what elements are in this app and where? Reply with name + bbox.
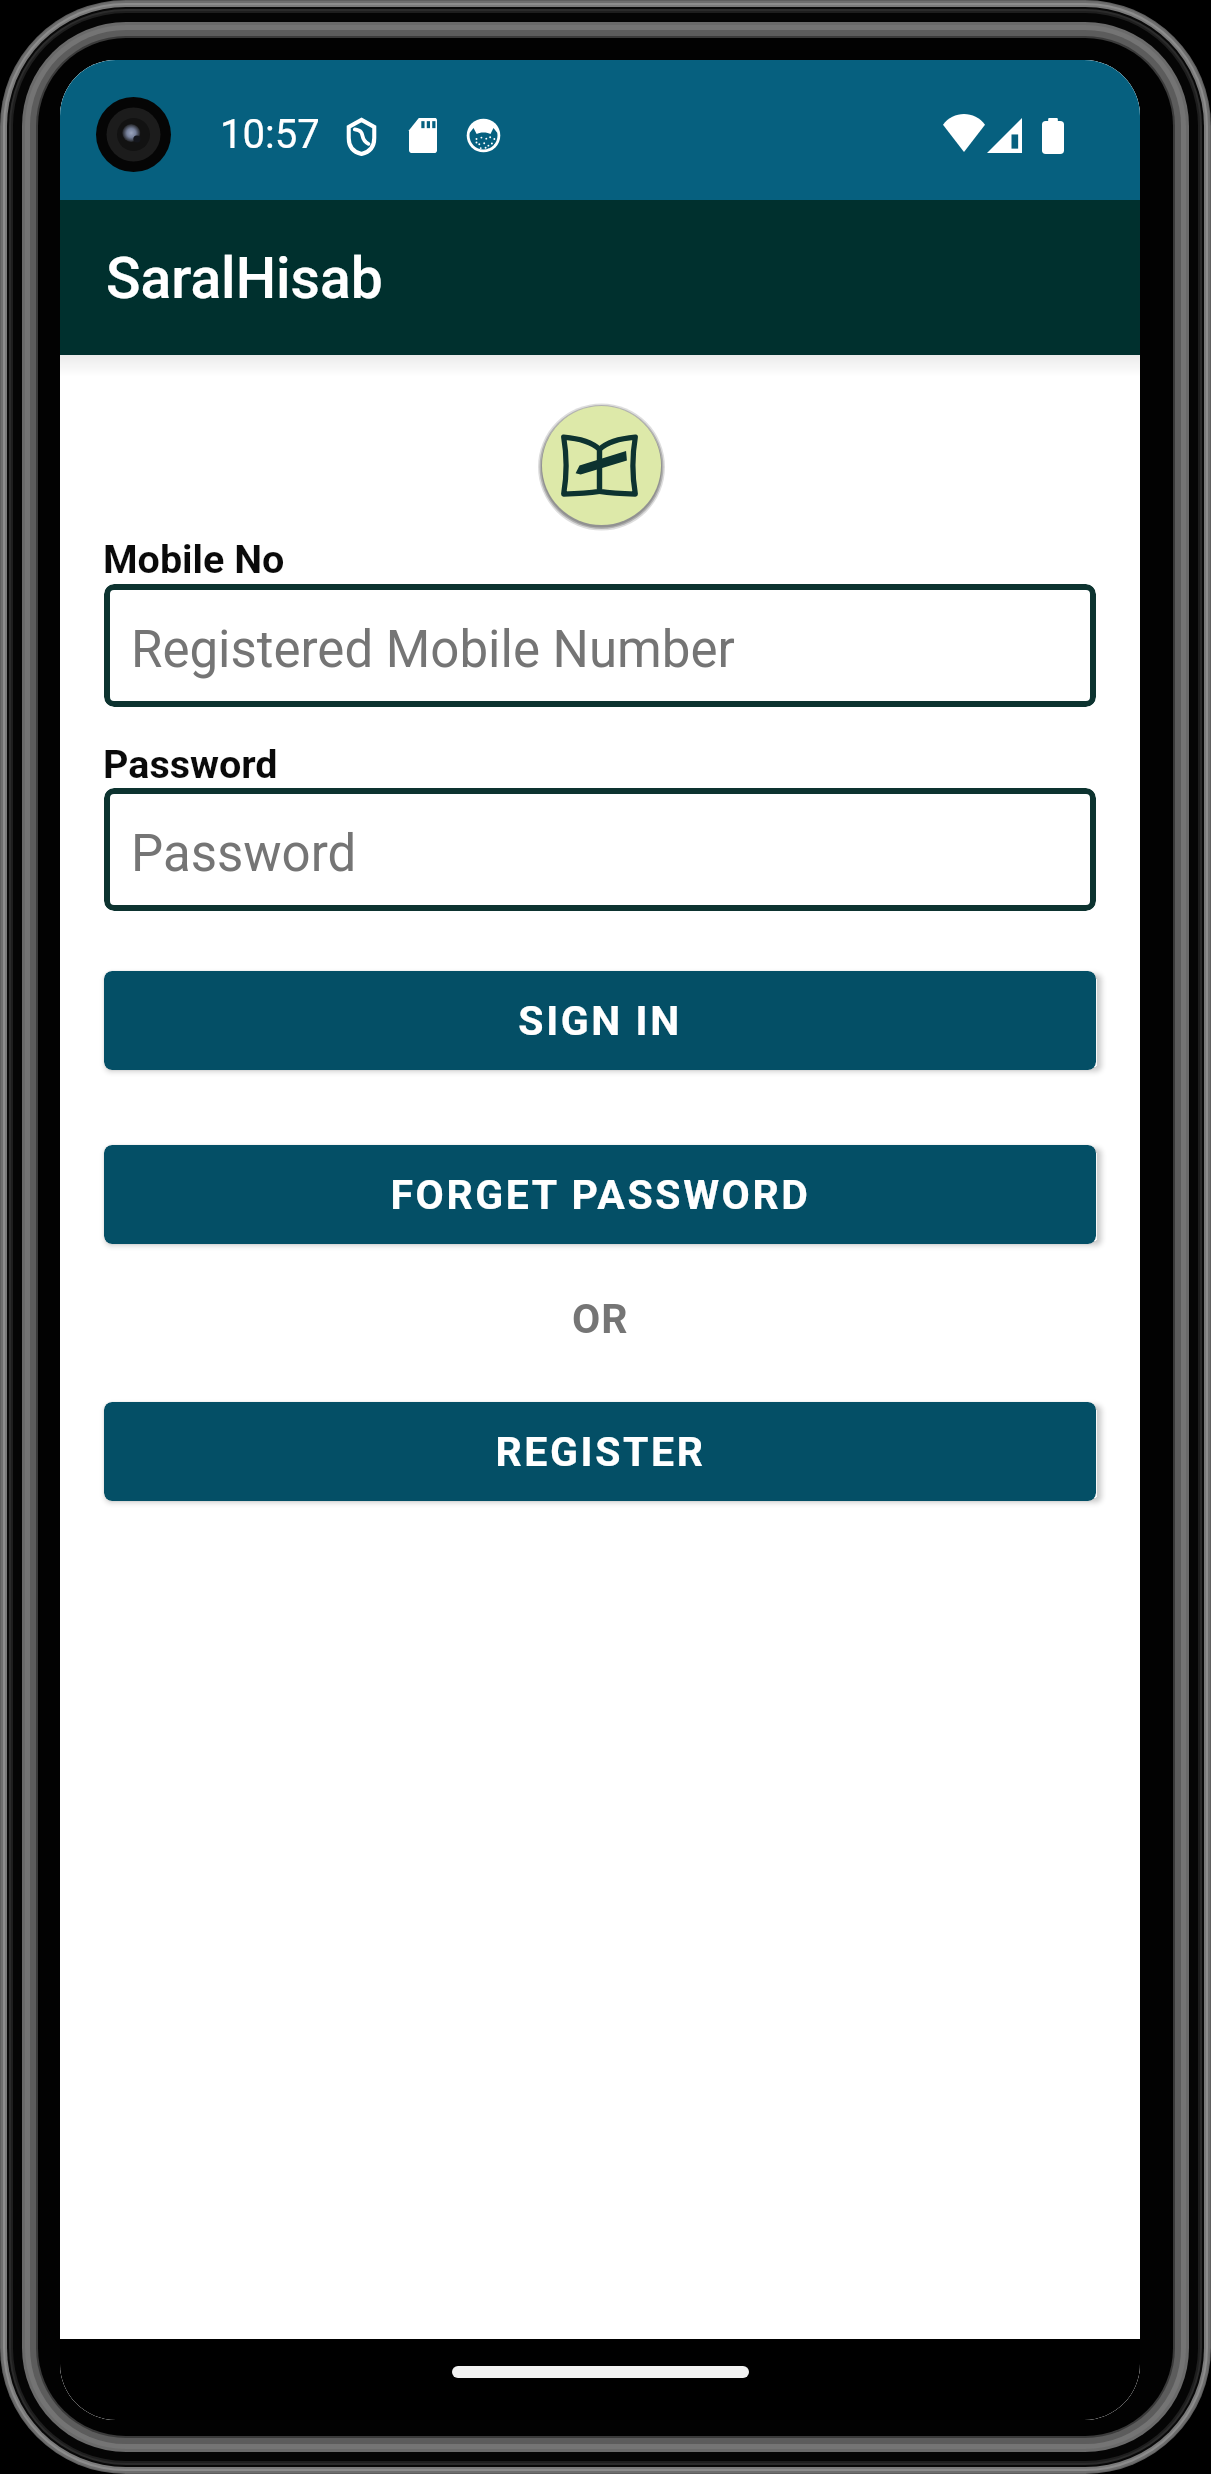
- staticText: OR: [572, 1295, 629, 1343]
- staticText: 10:57: [220, 111, 320, 158]
- staticText: REGISTER: [495, 1428, 706, 1476]
- button[interactable]: FORGET PASSWORD: [104, 1145, 1096, 1244]
- other: SaralHisab logo: [538, 402, 665, 529]
- button[interactable]: REGISTER: [104, 1402, 1096, 1501]
- staticText: FORGET PASSWORD: [390, 1171, 811, 1219]
- button[interactable]: Password: [104, 788, 1096, 911]
- button[interactable]: Registered Mobile Number: [104, 584, 1096, 707]
- staticText: Password: [103, 741, 278, 787]
- staticText: SaralHisab: [106, 245, 383, 312]
- staticText: Password: [131, 824, 357, 884]
- button[interactable]: SIGN IN: [104, 971, 1096, 1070]
- staticText: Registered Mobile Number: [131, 620, 735, 680]
- staticText: Mobile No: [103, 536, 285, 582]
- staticText: SIGN IN: [518, 997, 682, 1045]
